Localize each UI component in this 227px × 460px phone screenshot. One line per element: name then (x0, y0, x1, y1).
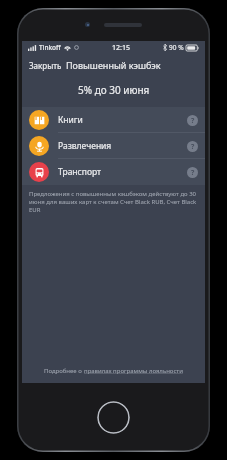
button[interactable]: Транспорт (22, 159, 205, 185)
staticText: 12:15 (112, 43, 130, 53)
staticText: правилах программы лояльности (84, 367, 183, 375)
staticText: Книги (58, 114, 83, 126)
staticText: ? (191, 142, 195, 152)
staticText: Транспорт (58, 166, 102, 178)
button[interactable]: Подробнее о (22, 361, 205, 381)
staticText: ? (191, 116, 195, 126)
staticText: Предложения с повышенным кэшбэком действ… (29, 190, 198, 214)
button[interactable]: Закрыть (22, 54, 69, 76)
staticText: 5% до 30 июня (78, 83, 150, 97)
button[interactable]: Книги (22, 107, 205, 133)
button[interactable]: Подробнее о Транспорт (187, 167, 198, 178)
button[interactable]: Развлечения (22, 133, 205, 159)
staticText: 90 % (169, 43, 184, 52)
button[interactable]: Home (97, 401, 130, 434)
staticText: Развлечения (58, 140, 112, 152)
staticText: ? (191, 168, 195, 178)
staticText: Закрыть (29, 60, 62, 71)
staticText: Подробнее о (44, 367, 84, 375)
staticText: Повышенный кэшбэк (66, 59, 161, 71)
button[interactable]: Подробнее о Книги (187, 115, 198, 126)
staticText: Tinkoff (39, 43, 61, 52)
button[interactable]: Подробнее о Развлечения (187, 141, 198, 152)
